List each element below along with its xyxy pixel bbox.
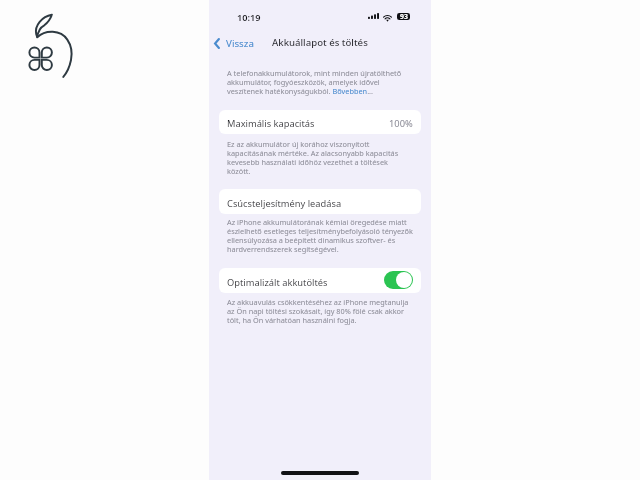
staticText: 100%: [389, 117, 413, 130]
staticText: Csúcsteljesítmény leadása: [227, 197, 342, 210]
button[interactable]: Optimalizált akkutöltés kapcsoló: [384, 271, 413, 289]
staticText: Optimalizált akkutöltés: [227, 276, 328, 289]
staticText: Az iPhone akkumulátorának kémiai öregedé…: [227, 217, 413, 255]
button[interactable]: Vissza: [212, 33, 258, 53]
staticText: Vissza: [226, 37, 254, 50]
staticText: 93: [400, 12, 408, 21]
staticText: Ez az akkumulátor új korához viszonyítot…: [227, 139, 399, 177]
staticText: A telefonakkumulátorok, mint minden újra…: [227, 68, 402, 97]
button[interactable]: Csúcsteljesítmény leadása: [219, 189, 421, 214]
staticText: Az akkuavulás csökkentéséhez az iPhone m…: [227, 297, 409, 326]
staticText: 10:19: [237, 11, 261, 24]
button[interactable]: Optimalizált akkutöltés: [219, 268, 421, 293]
staticText: Maximális kapacitás: [227, 117, 315, 130]
staticText: Akkuállapot és töltés: [272, 36, 368, 49]
button[interactable]: Maximális kapacitás: [219, 110, 421, 134]
